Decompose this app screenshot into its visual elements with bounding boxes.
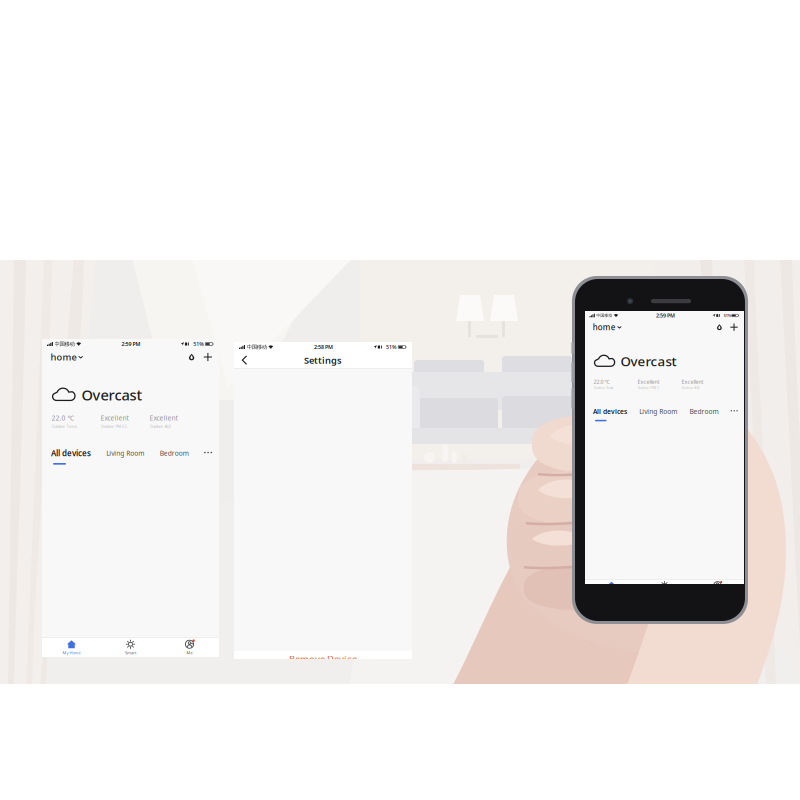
button[interactable]: Voice control (188, 353, 195, 361)
staticText: Me (186, 650, 192, 655)
staticText: My Home (62, 650, 80, 655)
staticText: All devices (51, 448, 91, 458)
staticText: Excellent (682, 378, 704, 385)
staticText: Bedroom (160, 449, 189, 458)
button[interactable]: Voice control (716, 324, 723, 330)
staticText: 2:58 PM (314, 343, 333, 351)
staticText: Outdoor PM2.5 (100, 423, 126, 429)
staticText: home (50, 351, 76, 363)
staticText: Living Room (106, 449, 144, 458)
staticText: Living Room (639, 407, 677, 416)
staticText: Outdoor PM2.5 (638, 386, 660, 390)
staticText: Smart (125, 650, 136, 655)
staticText: 22.0 ℃ (51, 413, 74, 422)
staticText: Outdoor AQI (149, 423, 170, 429)
button[interactable]: Add device (204, 353, 212, 361)
button[interactable]: Bedroom (689, 407, 718, 416)
staticText: 中国移动 (596, 313, 612, 318)
staticText: 中国移动 (247, 344, 267, 350)
button[interactable]: Living Room (106, 449, 144, 458)
staticText: 51% (193, 340, 204, 348)
staticText: 22.0 ℃ (593, 378, 609, 385)
staticText: Excellent (100, 413, 128, 422)
button[interactable]: Add device (730, 323, 738, 331)
staticText: Overcast (620, 352, 676, 370)
button[interactable]: My Home (585, 580, 638, 597)
staticText: 51% (386, 343, 397, 351)
button[interactable]: All devices (593, 407, 627, 416)
button[interactable]: More rooms (204, 452, 212, 455)
button[interactable]: Bedroom (160, 449, 189, 458)
button[interactable]: More rooms (730, 410, 738, 413)
staticText: Outdoor Temp (593, 386, 613, 390)
staticText: Bedroom (689, 407, 718, 416)
button[interactable]: Remove Device (234, 651, 412, 667)
button[interactable]: Smart (638, 580, 691, 597)
button[interactable]: home (593, 320, 621, 334)
staticText: 2:59 PM (122, 340, 141, 348)
staticText: home (593, 322, 616, 332)
staticText: All devices (593, 407, 627, 416)
button[interactable]: Me (160, 638, 219, 657)
staticText: Excellent (638, 378, 660, 385)
staticText: Remove Device (289, 653, 357, 665)
staticText: 51% (724, 313, 731, 318)
staticText: Excellent (149, 413, 177, 422)
staticText: Outdoor Temp (51, 423, 76, 429)
button[interactable]: Living Room (639, 407, 677, 416)
staticText: 中国移动 (55, 341, 75, 347)
staticText: Overcast (81, 385, 142, 404)
button[interactable]: All devices (51, 448, 91, 458)
staticText: Outdoor AQI (682, 386, 700, 390)
button[interactable]: My Home (42, 638, 101, 657)
button[interactable]: Me (691, 580, 744, 597)
button[interactable]: home (50, 349, 83, 365)
staticText: 2:59 PM (656, 312, 675, 319)
button[interactable]: Back (239, 353, 250, 367)
staticText: Settings (304, 354, 342, 366)
button[interactable]: Smart (101, 638, 160, 657)
